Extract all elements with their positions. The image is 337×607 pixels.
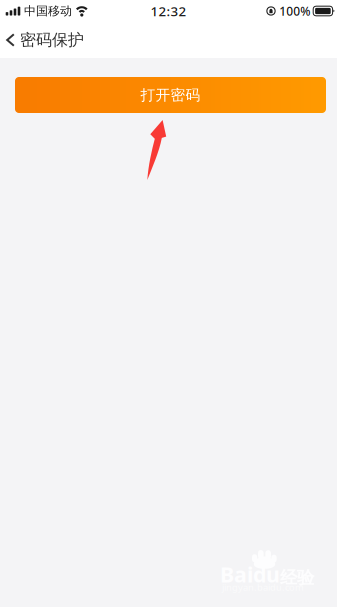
staticText: 中国移动 (24, 4, 72, 18)
button[interactable]: 密码保护 (0, 22, 92, 58)
staticText: 密码保护 (20, 30, 84, 50)
staticText: 经验 (280, 567, 314, 588)
staticText: Baidu (220, 560, 280, 588)
staticText: 100% (279, 3, 310, 19)
button[interactable]: 打开密码 (15, 77, 326, 113)
staticText: 12:32 (150, 2, 186, 20)
staticText: 打开密码 (140, 86, 200, 104)
